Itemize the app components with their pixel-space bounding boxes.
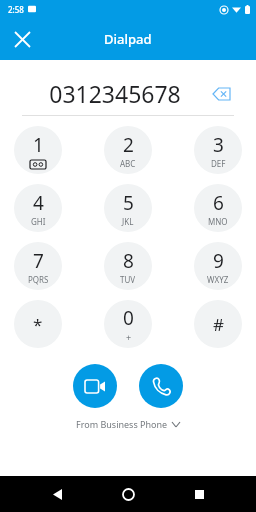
staticText: 9 xyxy=(213,248,224,274)
staticText: 4 xyxy=(33,190,44,216)
staticText: 8 xyxy=(123,248,134,274)
button[interactable]: 5 xyxy=(104,184,152,232)
button[interactable]: Close xyxy=(6,23,38,55)
button[interactable]: 3 xyxy=(194,126,242,174)
staticText: Dialpad xyxy=(104,30,152,48)
staticText: 7 xyxy=(33,248,44,274)
button[interactable]: 9 xyxy=(194,242,242,290)
staticText: 5 xyxy=(123,190,134,216)
button[interactable]: From Business Phone xyxy=(0,418,256,430)
staticText: * xyxy=(33,313,43,336)
button[interactable]: Back xyxy=(43,480,71,508)
staticText: 0312345678 xyxy=(22,78,208,109)
staticText: GHI xyxy=(31,216,46,227)
staticText: From Business Phone xyxy=(76,418,168,430)
staticText: MNO xyxy=(208,216,228,227)
button[interactable]: Call xyxy=(139,364,183,408)
staticText: DEF xyxy=(211,158,226,169)
button[interactable]: 1 xyxy=(14,126,62,174)
button[interactable]: # xyxy=(194,300,242,348)
button[interactable]: 8 xyxy=(104,242,152,290)
staticText: ABC xyxy=(120,158,136,169)
staticText: 2:58 xyxy=(8,4,24,15)
button[interactable]: Backspace xyxy=(208,81,234,107)
staticText: TUV xyxy=(120,274,136,285)
staticText: + xyxy=(126,331,132,343)
staticText: 6 xyxy=(213,190,224,216)
staticText: # xyxy=(213,313,224,336)
button[interactable]: 4 xyxy=(14,184,62,232)
staticText: 2 xyxy=(123,132,134,158)
staticText: 1 xyxy=(33,132,44,158)
button[interactable]: Home xyxy=(114,480,142,508)
button[interactable]: 2 xyxy=(104,126,152,174)
button[interactable]: * xyxy=(14,300,62,348)
staticText: JKL xyxy=(122,216,134,227)
button[interactable]: 6 xyxy=(194,184,242,232)
staticText: PQRS xyxy=(28,274,49,285)
button[interactable]: Recents xyxy=(185,480,213,508)
staticText: WXYZ xyxy=(207,274,229,285)
button[interactable]: Video call xyxy=(73,364,117,408)
staticText: 3 xyxy=(213,132,224,158)
staticText: 0 xyxy=(123,305,134,331)
button[interactable]: 0 xyxy=(104,300,152,348)
button[interactable]: 7 xyxy=(14,242,62,290)
